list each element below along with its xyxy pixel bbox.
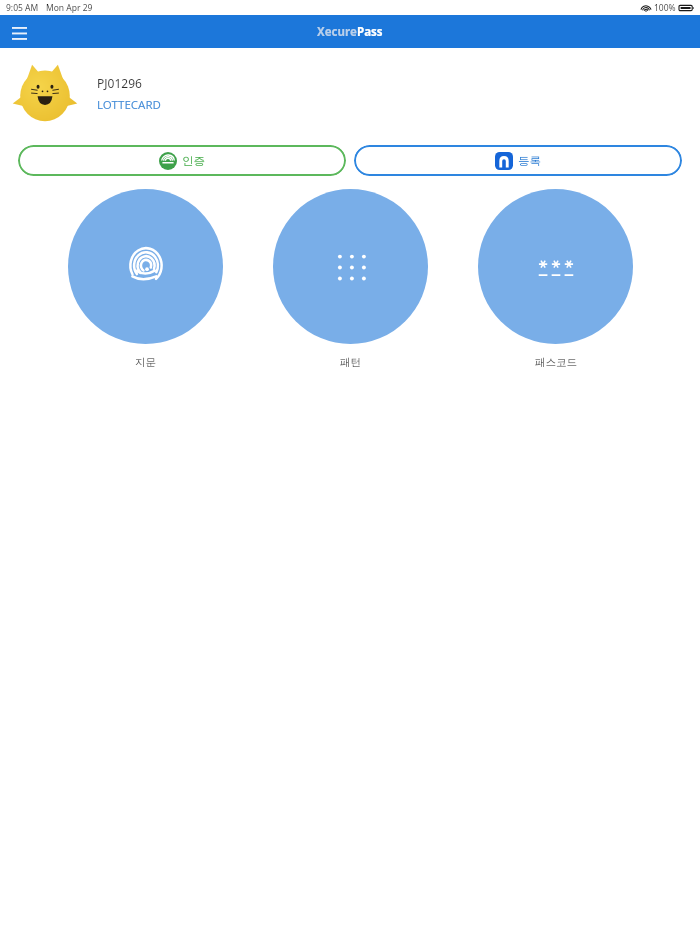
staticText: LOTTECARD [97, 97, 162, 113]
button[interactable]: Open navigation menu [8, 21, 30, 43]
staticText: 지문 [135, 356, 156, 369]
staticText: 패스코드 [535, 356, 577, 369]
button[interactable]: 패스코드 [478, 189, 633, 369]
button[interactable]: 등록 [354, 145, 682, 176]
button[interactable]: PJ01296 [14, 63, 700, 125]
staticText: 9:05 AM [6, 2, 39, 14]
button[interactable]: 패턴 [273, 189, 428, 369]
staticText: Xecure [317, 24, 357, 40]
staticText: 인증 [182, 154, 205, 168]
button[interactable]: 지문 [68, 189, 223, 369]
staticText: Mon Apr 29 [46, 2, 93, 14]
staticText: 등록 [518, 154, 541, 168]
button[interactable]: 인증 [18, 145, 346, 176]
staticText: 100% [654, 2, 676, 14]
staticText: Pass [357, 24, 383, 40]
staticText: PJ01296 [97, 75, 142, 91]
staticText: 패턴 [340, 356, 361, 369]
